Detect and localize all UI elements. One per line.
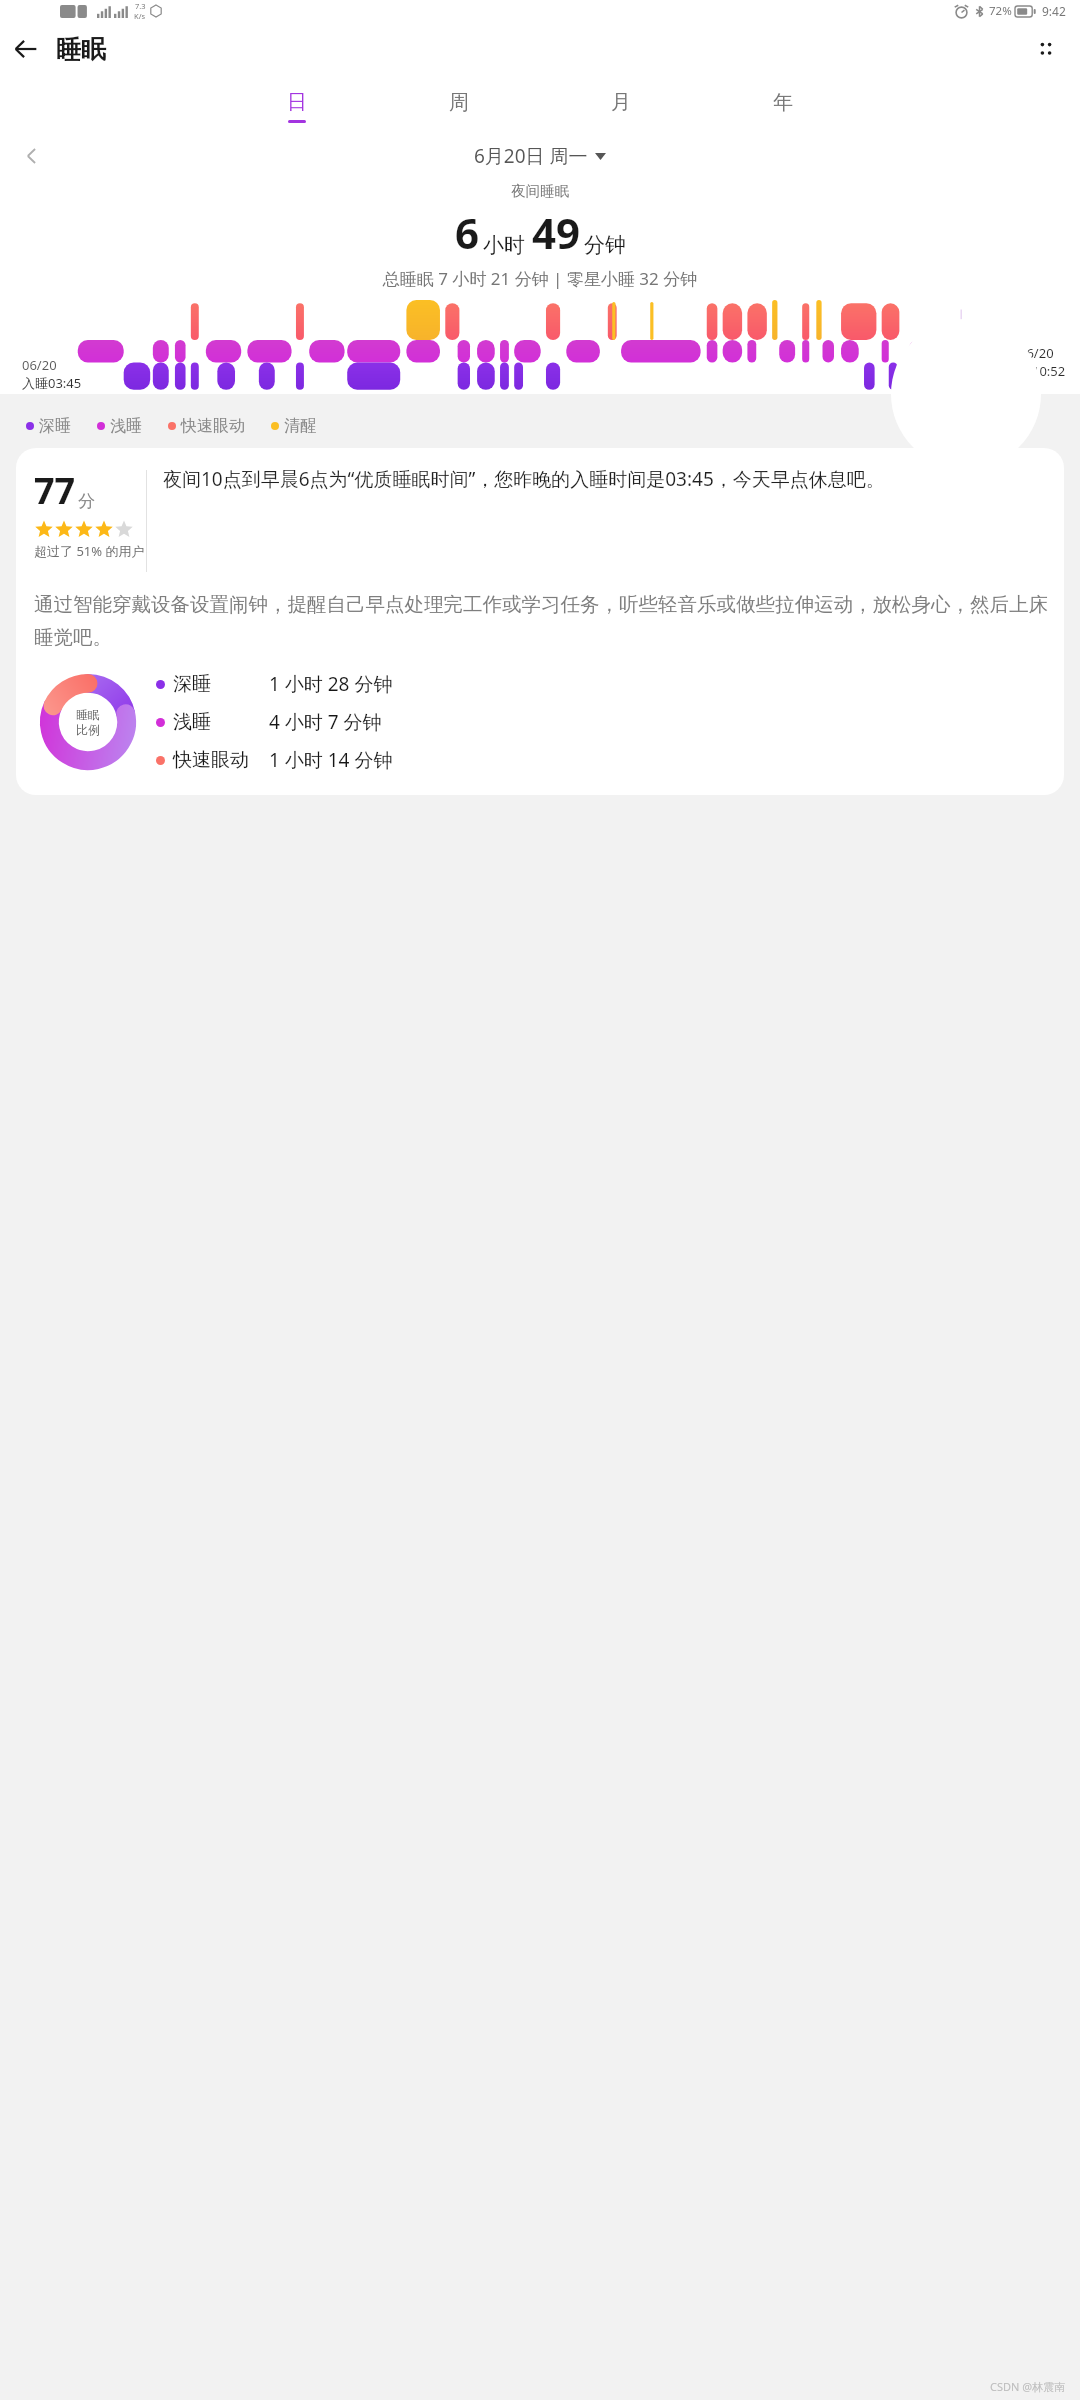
staticText: 4 小时 7 分钟 <box>269 709 1048 735</box>
staticText: 1 小时 14 分钟 <box>269 747 1048 773</box>
staticText: 夜间10点到早晨6点为“优质睡眠时间”，您昨晚的入睡时间是03:45，今天早点休… <box>163 466 885 492</box>
button[interactable]: 月 <box>540 87 702 126</box>
staticText: 日 <box>287 90 307 115</box>
staticText: K/s <box>134 11 146 21</box>
staticText: 浅睡 <box>173 710 269 734</box>
staticText: 快速眼动 <box>181 416 245 436</box>
staticText: 睡眠 <box>56 34 106 65</box>
button[interactable]: 清醒 <box>271 416 316 436</box>
button[interactable]: 77 <box>16 448 1064 795</box>
staticText: 分 <box>78 491 95 512</box>
staticText: 小时 <box>483 232 525 258</box>
staticText: 周 <box>449 90 469 115</box>
button[interactable]: 6月20日 周一 <box>466 139 614 173</box>
staticText: 月 <box>611 90 631 115</box>
staticText: 1 小时 28 分钟 <box>269 671 1048 697</box>
staticText: 9:42 <box>1042 3 1066 19</box>
staticText: 清醒 <box>284 416 316 436</box>
staticText: 夜间睡眠 <box>0 182 1080 200</box>
button[interactable]: 快速眼动 <box>168 416 245 436</box>
staticText: 6 <box>455 204 480 261</box>
staticText: 77 <box>34 466 76 515</box>
staticText: 深睡 <box>173 672 269 696</box>
staticText: 深睡 <box>39 416 71 436</box>
button[interactable]: 深睡 <box>26 416 71 436</box>
staticText: 06/20 <box>1019 344 1054 362</box>
staticText: 睡眠 <box>76 707 100 722</box>
button[interactable]: 深睡 <box>156 665 1048 703</box>
staticText: 72% <box>989 3 1012 19</box>
button[interactable]: More options <box>1020 23 1072 75</box>
staticText: 年 <box>773 90 793 115</box>
button[interactable]: 浅睡 <box>156 703 1048 741</box>
button[interactable]: 年 <box>702 87 864 126</box>
staticText: 06/20 <box>22 356 57 374</box>
button[interactable]: Previous day <box>14 138 50 174</box>
staticText: 浅睡 <box>110 416 142 436</box>
staticText: 分钟 <box>584 232 626 258</box>
staticText: 醒来10:52 <box>1006 362 1066 380</box>
button[interactable]: 快速眼动 <box>156 741 1048 779</box>
staticText: 总睡眠 7 小时 21 分钟 | 零星小睡 32 分钟 <box>0 267 1080 290</box>
staticText: 快速眼动 <box>173 748 269 772</box>
staticText: 49 <box>532 204 581 261</box>
staticText: 6月20日 周一 <box>474 143 588 169</box>
staticText: 超过了 51% 的用户 <box>34 542 145 560</box>
button[interactable]: 周 <box>378 87 540 126</box>
staticText: 入睡03:45 <box>22 374 82 392</box>
staticText: CSDN @林震南 <box>990 2379 1066 2394</box>
staticText: 通过智能穿戴设备设置闹钟，提醒自己早点处理完工作或学习任务，听些轻音乐或做些拉伸… <box>34 592 1048 649</box>
staticText: 比例 <box>76 722 100 737</box>
button[interactable]: 日 <box>216 87 378 126</box>
button[interactable]: Back <box>0 23 52 75</box>
button[interactable]: 浅睡 <box>97 416 142 436</box>
staticText: 7.3 <box>135 1 146 11</box>
